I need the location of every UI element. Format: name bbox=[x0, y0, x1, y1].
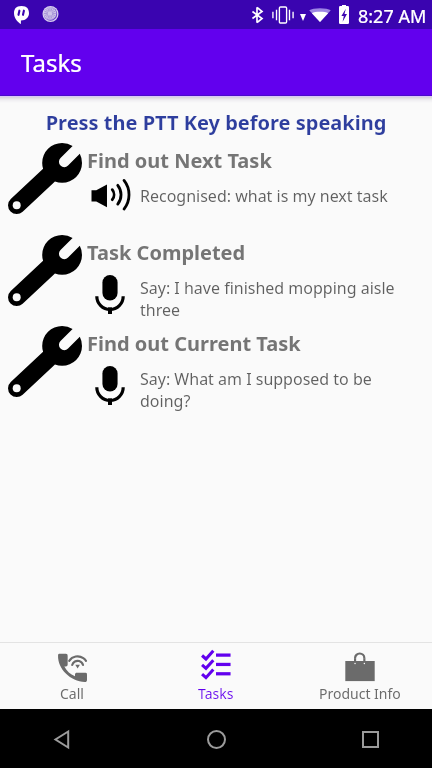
staticText: Tasks bbox=[198, 684, 234, 703]
button[interactable]: Back bbox=[40, 717, 84, 761]
button[interactable]: Recents bbox=[348, 717, 392, 761]
staticText: 8:27 AM bbox=[358, 4, 427, 29]
button[interactable]: Find out Current Task bbox=[0, 320, 432, 408]
button[interactable]: Task Completed bbox=[0, 229, 432, 317]
staticText: Find out Next Task bbox=[87, 147, 272, 174]
button[interactable]: Tasks bbox=[144, 643, 288, 709]
staticText: Task Completed bbox=[87, 239, 246, 266]
button[interactable]: Find out Next Task bbox=[0, 137, 432, 225]
button[interactable]: Home bbox=[194, 717, 238, 761]
button[interactable]: Product Info bbox=[288, 643, 432, 709]
staticText: Say: What am I supposed to be doing? bbox=[140, 368, 408, 412]
staticText: Press the PTT Key before speaking bbox=[0, 109, 432, 136]
staticText: Call bbox=[60, 684, 84, 703]
staticText: Say: I have finished mopping aisle three bbox=[140, 277, 408, 321]
button[interactable]: Call bbox=[0, 643, 144, 709]
staticText: Find out Current Task bbox=[87, 330, 301, 357]
staticText: Recognised: what is my next task bbox=[140, 185, 408, 207]
staticText: Tasks bbox=[21, 46, 82, 79]
staticText: Product Info bbox=[319, 684, 401, 703]
